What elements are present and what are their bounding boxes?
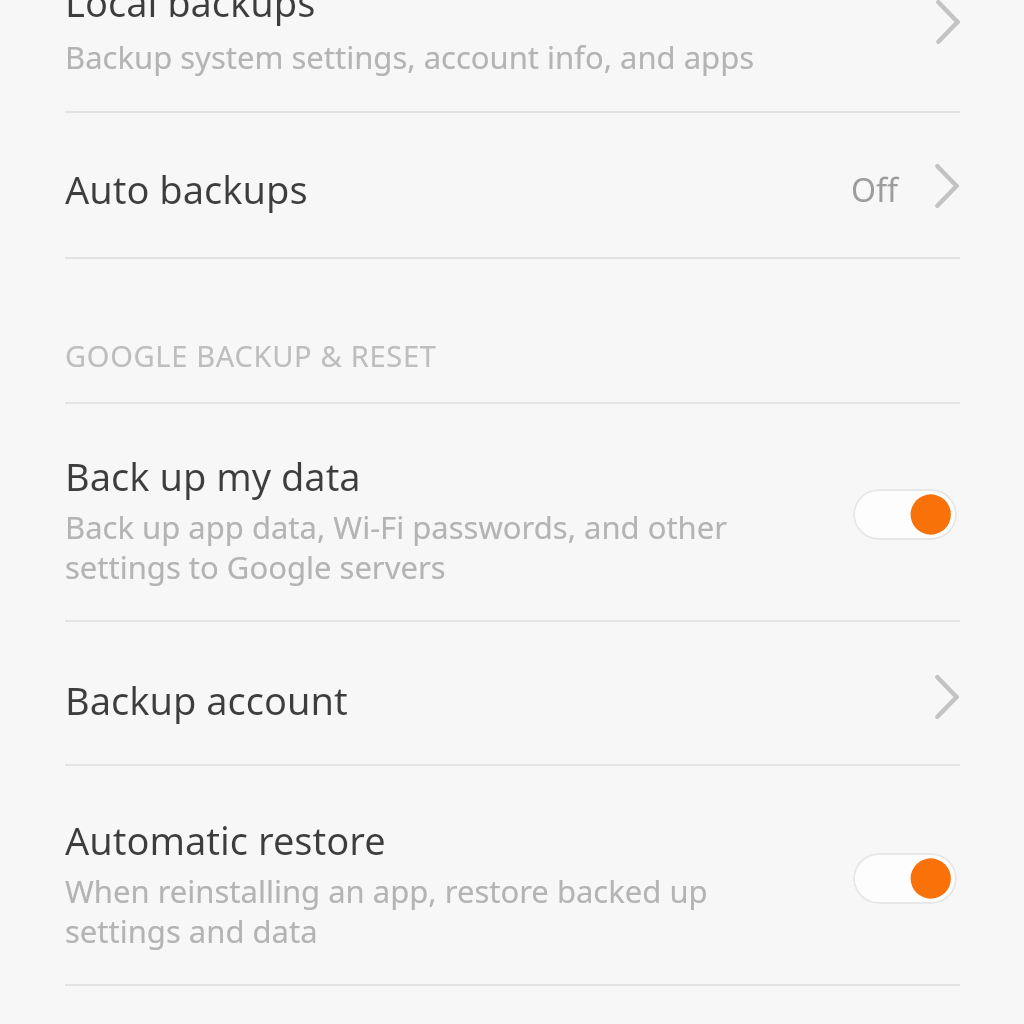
button[interactable] (0, 622, 1024, 764)
button[interactable] (0, 0, 1024, 111)
button[interactable] (0, 113, 1024, 257)
button[interactable] (0, 404, 1024, 620)
staticText: Back up my data (65, 450, 361, 502)
button[interactable] (0, 766, 1024, 984)
staticText: Backup account (65, 674, 348, 726)
button[interactable]: Backup account (917, 667, 977, 727)
button[interactable]: Back up my data (853, 489, 957, 540)
staticText: Automatic restore (65, 814, 386, 866)
staticText: Off (851, 168, 899, 212)
staticText: Backup system settings, account info, an… (65, 36, 755, 78)
staticText: Back up app data, Wi-Fi passwords, and o… (65, 506, 728, 588)
button[interactable]: Automatic restore (853, 853, 957, 904)
button[interactable]: Local backups (918, 0, 978, 52)
staticText: Local backups (65, 0, 316, 28)
button[interactable]: Auto backups (917, 156, 977, 216)
staticText: When reinstalling an app, restore backed… (65, 870, 708, 952)
staticText: Auto backups (65, 163, 308, 215)
staticText: GOOGLE BACKUP & RESET (65, 336, 437, 375)
